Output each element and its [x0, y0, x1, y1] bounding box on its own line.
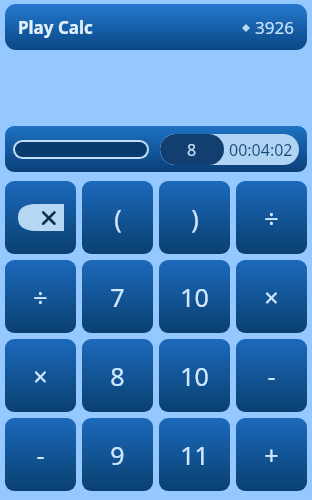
button[interactable]: 7 [82, 260, 153, 333]
staticText: ÷ [264, 201, 279, 235]
button[interactable]: - [5, 418, 76, 491]
button[interactable]: 10 [159, 260, 230, 333]
button[interactable]: - [236, 339, 307, 412]
staticText: - [267, 359, 276, 393]
button[interactable]: 11 [159, 418, 230, 491]
staticText: 8 [187, 139, 197, 161]
staticText: - [36, 438, 45, 472]
staticText: × [33, 359, 48, 393]
button[interactable]: ÷ [236, 181, 307, 254]
staticText: 3926 [255, 16, 294, 39]
staticText: 9 [110, 438, 125, 472]
button[interactable]: ( [82, 181, 153, 254]
staticText: ) [191, 201, 199, 235]
staticText: × [264, 280, 279, 314]
staticText: ÷ [33, 280, 48, 314]
staticText: + [264, 438, 279, 472]
button[interactable]: 9 [82, 418, 153, 491]
staticText: Play Calc [18, 16, 93, 39]
button[interactable]: + [236, 418, 307, 491]
button[interactable]: ÷ [5, 260, 76, 333]
button[interactable]: Play Calc [5, 4, 307, 50]
button[interactable]: × [5, 339, 76, 412]
staticText: 00:04:02 [229, 139, 293, 161]
button[interactable]: 10 [159, 339, 230, 412]
staticText: 7 [110, 280, 125, 314]
button[interactable]: Backspace [5, 181, 76, 254]
staticText: 8 [110, 359, 125, 393]
button[interactable]: 8 [82, 339, 153, 412]
button[interactable]: × [236, 260, 307, 333]
staticText: 10 [180, 359, 209, 393]
staticText: 11 [180, 438, 209, 472]
staticText: ( [114, 201, 122, 235]
button[interactable]: ) [159, 181, 230, 254]
button[interactable]: 8 [160, 134, 299, 165]
staticText: 10 [180, 280, 209, 314]
